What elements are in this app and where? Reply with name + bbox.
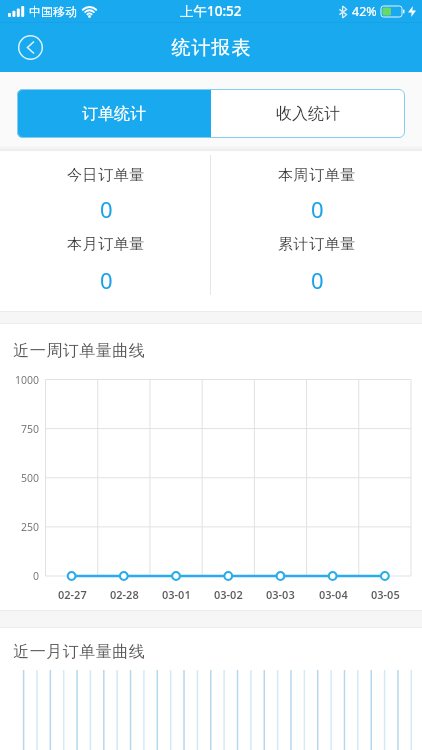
staticText: 上午10:52 [180,2,242,20]
staticText: 02-27 [58,587,87,602]
staticText: 收入统计 [276,104,340,124]
staticText: 03-03 [266,587,295,602]
staticText: 近一月订单量曲线 [13,642,145,662]
staticText: 0 [311,194,324,224]
button[interactable] [16,33,44,61]
staticText: 1000 [15,373,40,387]
staticText: 250 [21,520,40,534]
staticText: 500 [21,471,40,485]
staticText: 中国移动 [29,4,77,19]
button[interactable]: 收入统计 [211,89,405,138]
staticText: 0 [311,265,324,295]
staticText: 750 [21,422,40,436]
staticText: 本周订单量 [278,166,356,185]
staticText: 0 [100,194,113,224]
staticText: 0 [33,569,40,583]
staticText: 0 [100,265,113,295]
staticText: 今日订单量 [67,166,145,185]
staticText: 42% [352,3,377,20]
staticText: 03-02 [214,587,243,602]
staticText: 03-04 [319,587,348,602]
staticText: 订单统计 [82,104,146,124]
staticText: 02-28 [110,587,139,602]
staticText: 03-05 [371,587,400,602]
staticText: 本月订单量 [67,235,145,254]
staticText: 近一周订单量曲线 [13,341,145,361]
button[interactable] [0,160,211,236]
staticText: 统计报表 [171,36,251,60]
button[interactable] [211,160,422,236]
staticText: 03-01 [162,587,191,602]
staticText: 累计订单量 [278,235,356,254]
button[interactable]: 订单统计 [17,89,211,138]
